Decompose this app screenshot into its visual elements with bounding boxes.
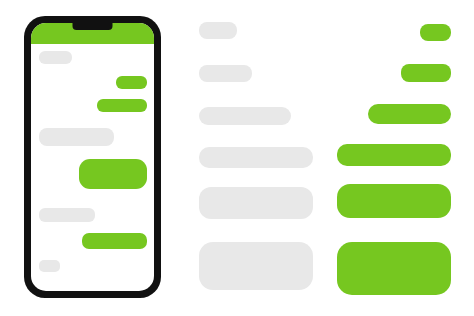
button[interactable]: Sent message [82, 233, 147, 249]
button[interactable]: Message [39, 208, 95, 222]
button[interactable]: Phone mockup [24, 16, 161, 298]
button[interactable]: Message bubble [199, 187, 313, 219]
button[interactable]: Message bubble [199, 147, 313, 168]
button[interactable]: Sent bubble [420, 24, 451, 41]
button[interactable]: Sent bubble [401, 64, 451, 82]
button[interactable]: Message [39, 260, 60, 272]
button[interactable]: Message bubble [199, 242, 313, 290]
button[interactable]: Sent message [97, 99, 147, 112]
button[interactable]: Sent bubble [337, 242, 451, 295]
button[interactable]: Message bubble [199, 107, 291, 125]
button[interactable]: Message bubble [199, 22, 237, 39]
button[interactable]: Message [39, 128, 114, 146]
button[interactable]: Sent bubble [337, 144, 451, 166]
button[interactable]: Sent bubble [368, 104, 451, 124]
button[interactable]: Sent message [79, 159, 147, 189]
button[interactable]: Message bubble [199, 65, 252, 82]
button[interactable]: Message [39, 51, 72, 64]
button[interactable]: Sent message [116, 76, 147, 89]
button[interactable]: Sent bubble [337, 184, 451, 218]
